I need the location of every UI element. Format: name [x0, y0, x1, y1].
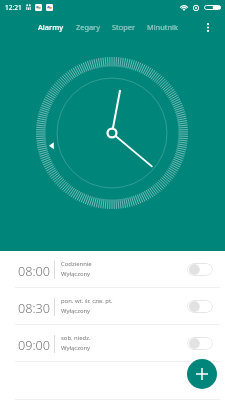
button[interactable]: 08:00	[0, 251, 225, 288]
button[interactable]: Toggle alarm	[187, 300, 213, 313]
staticText: Zegary	[76, 22, 100, 32]
staticText: Codziennie	[61, 260, 92, 268]
button[interactable]: 09:00	[0, 325, 225, 362]
staticText: 09:00	[18, 336, 51, 353]
button[interactable]: Toggle alarm	[187, 263, 213, 276]
button[interactable]: 08:30	[0, 288, 225, 325]
button[interactable]: Minutnik	[141, 14, 184, 40]
staticText: Wyłączony	[61, 270, 91, 278]
staticText: 08:00	[18, 262, 51, 279]
staticText: Alarmy	[38, 22, 64, 32]
staticText: sob. niedz.	[61, 334, 91, 342]
staticText: Stoper	[112, 22, 135, 32]
staticText: pon. wt. śr. czw. pt.	[61, 297, 113, 305]
button[interactable]: Alarmy	[32, 14, 70, 40]
button[interactable]: Zegary	[70, 14, 106, 40]
staticText: Minutnik	[147, 22, 178, 32]
staticText: 08:30	[18, 299, 51, 316]
staticText: Wyłączony	[61, 344, 91, 352]
staticText: 12:21	[5, 3, 22, 12]
button[interactable]: Stoper	[106, 14, 141, 40]
button[interactable]: Toggle alarm	[187, 337, 213, 350]
button[interactable]: More options	[198, 14, 217, 40]
staticText: Wyłączony	[61, 307, 91, 315]
button[interactable]: Add alarm	[187, 359, 217, 389]
